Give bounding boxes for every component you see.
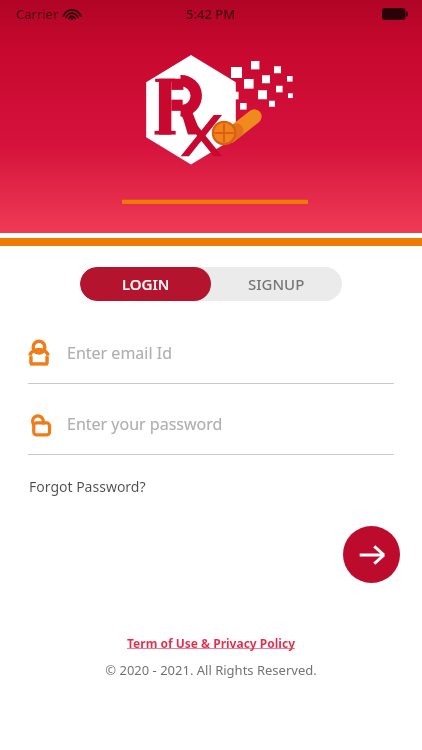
button[interactable]: Submit <box>343 526 400 583</box>
button[interactable]: Password <box>28 405 394 455</box>
button[interactable]: Email <box>28 334 394 384</box>
staticText: 5:42 PM <box>186 5 236 23</box>
staticText: Enter email Id <box>67 342 172 364</box>
staticText: © 2020 - 2021. All Rights Reserved. <box>105 661 317 679</box>
button[interactable]: SIGNUP <box>211 267 342 301</box>
other: Email <box>28 340 50 366</box>
staticText: Term of Use & Privacy Policy <box>127 635 295 651</box>
staticText: LOGIN <box>122 274 170 294</box>
staticText: Enter your password <box>67 413 223 435</box>
staticText: Forgot Password? <box>29 477 146 496</box>
staticText: SIGNUP <box>248 274 305 294</box>
button[interactable]: LOGIN <box>80 267 211 301</box>
button[interactable]: Forgot Password? <box>28 474 147 499</box>
other: Password <box>28 411 50 437</box>
staticText: Carrier <box>16 5 59 23</box>
button[interactable]: Term of Use & Privacy Policy <box>123 633 299 653</box>
